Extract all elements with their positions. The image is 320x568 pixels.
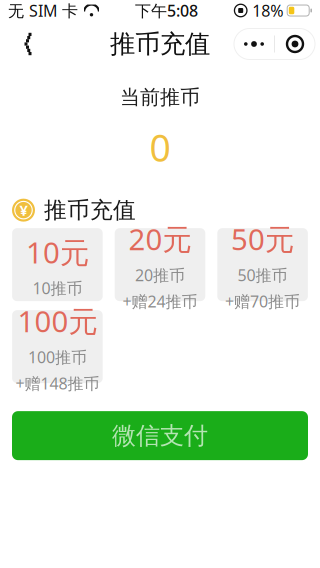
staticText: 100推币 xyxy=(28,346,87,368)
staticText: ¥ xyxy=(19,200,27,220)
staticText: 无 SIM 卡 xyxy=(8,0,78,21)
button[interactable]: 100元 xyxy=(12,310,103,383)
button[interactable]: 50元 xyxy=(217,228,308,301)
staticText: 推币充值 xyxy=(110,28,210,59)
staticText: 20推币 xyxy=(135,264,185,286)
staticText: +赠24推币 xyxy=(122,291,197,312)
staticText: 18% xyxy=(252,0,283,21)
staticText: +赠148推币 xyxy=(15,373,99,394)
button[interactable]: 20元 xyxy=(115,228,205,301)
staticText: 微信支付 xyxy=(112,421,208,450)
staticText: 10元 xyxy=(26,232,89,271)
button[interactable]: 微信支付 xyxy=(12,411,308,460)
button[interactable]: 返回 xyxy=(5,22,49,66)
button[interactable]: 更多 xyxy=(234,28,274,59)
staticText: 10推币 xyxy=(32,277,82,299)
staticText: 50元 xyxy=(231,219,294,258)
staticText: 20元 xyxy=(128,219,191,258)
staticText: +赠70推币 xyxy=(225,291,300,312)
staticText: 100元 xyxy=(17,301,97,340)
staticText: 当前推币 xyxy=(120,85,200,110)
button[interactable]: 关闭 xyxy=(275,28,315,59)
staticText: 0 xyxy=(149,123,170,172)
staticText: 推币充值 xyxy=(44,196,136,224)
staticText: 下午5:08 xyxy=(135,0,198,21)
button[interactable]: 10元 xyxy=(12,228,103,301)
staticText: 50推币 xyxy=(238,264,288,286)
